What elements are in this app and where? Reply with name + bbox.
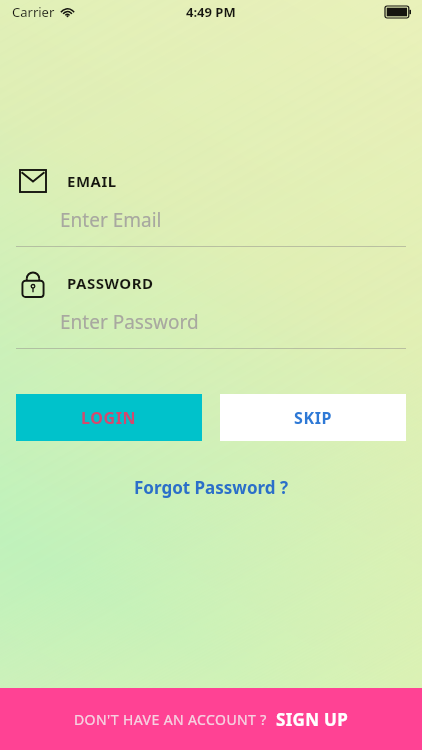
staticText: EMAIL <box>67 171 117 191</box>
staticText: 4:49 PM <box>186 3 236 21</box>
staticText: LOGIN <box>81 407 137 429</box>
staticText: Carrier <box>12 3 55 21</box>
staticText: Enter Email <box>60 207 162 233</box>
staticText: PASSWORD <box>67 273 154 293</box>
staticText: DON'T HAVE AN ACCOUNT ? <box>74 710 267 729</box>
staticText: Enter Password <box>60 309 199 335</box>
button[interactable]: Forgot Password ? <box>120 470 303 505</box>
button[interactable]: Enter Password <box>16 307 406 337</box>
button[interactable]: SKIP <box>220 394 406 441</box>
staticText: Forgot Password ? <box>134 476 289 499</box>
staticText: SIGN UP <box>276 708 349 731</box>
button[interactable]: Enter Email <box>16 205 406 235</box>
button[interactable]: LOGIN <box>16 394 202 441</box>
staticText: SKIP <box>294 407 333 429</box>
other: Email <box>18 166 48 196</box>
other: Password <box>18 268 48 298</box>
button[interactable]: DON'T HAVE AN ACCOUNT ? <box>0 688 422 750</box>
